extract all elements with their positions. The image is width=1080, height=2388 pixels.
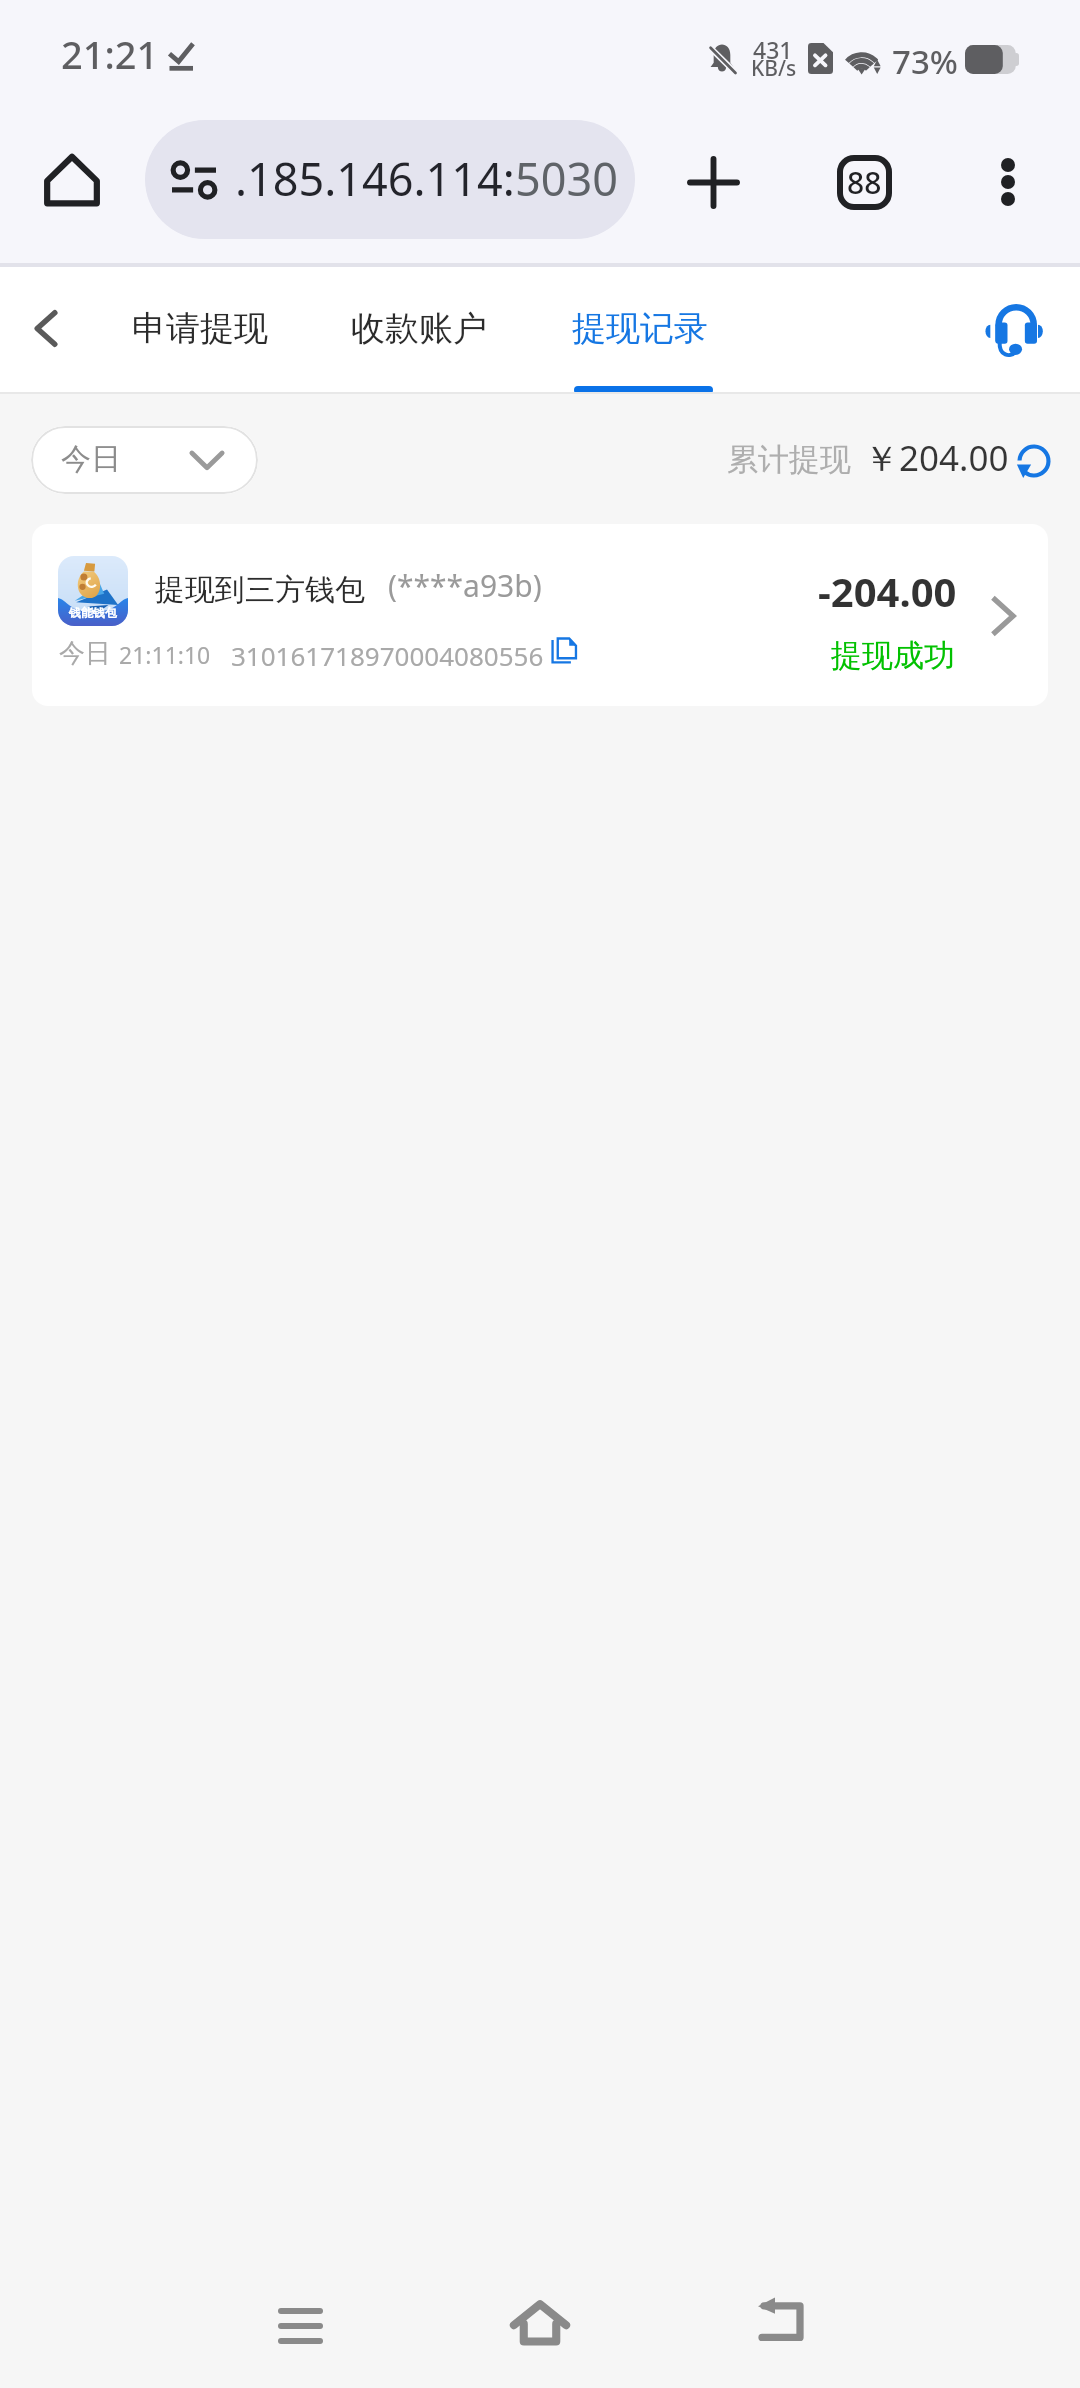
button[interactable]: 钱能钱包 [32, 524, 1048, 706]
staticText: 310161718970004080556 [231, 638, 544, 673]
button[interactable]: Refresh [1012, 439, 1056, 483]
button[interactable]: 收款账户 [341, 267, 497, 394]
staticText: ￥204.00 [864, 434, 1009, 482]
staticText: 收款账户 [351, 307, 487, 350]
staticText: 今日 [61, 440, 121, 478]
button[interactable]: 申请提现 [122, 267, 278, 394]
button[interactable]: Copy [547, 634, 581, 668]
button[interactable]: New tab [665, 134, 761, 230]
staticText: 今日 [59, 637, 111, 670]
button[interactable]: Back [6, 288, 86, 368]
button[interactable]: Home [32, 142, 112, 222]
staticText: 21:21 [61, 28, 159, 80]
staticText: .185.146.114: [235, 148, 515, 209]
button[interactable]: Tabs [816, 134, 912, 230]
button[interactable]: Home [480, 2263, 600, 2383]
staticText: (****a93b) [388, 565, 542, 606]
staticText: 5030 [515, 148, 618, 209]
button[interactable]: 今日 [31, 426, 258, 494]
staticText: 21:11:10 [119, 639, 211, 670]
button[interactable]: Customer service [964, 278, 1064, 378]
staticText: 提现成功 [831, 636, 955, 675]
staticText: 431 [753, 34, 793, 65]
staticText: -204.00 [818, 564, 957, 618]
button[interactable]: 提现记录 [562, 267, 718, 394]
button[interactable]: Recent apps [240, 2266, 360, 2386]
staticText: 申请提现 [132, 307, 268, 350]
button[interactable]: More options [960, 134, 1056, 230]
staticText: 钱能钱包 [69, 605, 117, 620]
button[interactable]: Back [720, 2259, 840, 2379]
staticText: KB/s [751, 54, 797, 83]
staticText: 73% [892, 39, 958, 84]
staticText: 88 [847, 162, 882, 203]
button[interactable]: .185.146.114: [145, 120, 635, 239]
staticText: 提现到三方钱包 [155, 571, 365, 609]
staticText: 提现记录 [572, 307, 708, 350]
staticText: 累计提现 [727, 440, 851, 479]
